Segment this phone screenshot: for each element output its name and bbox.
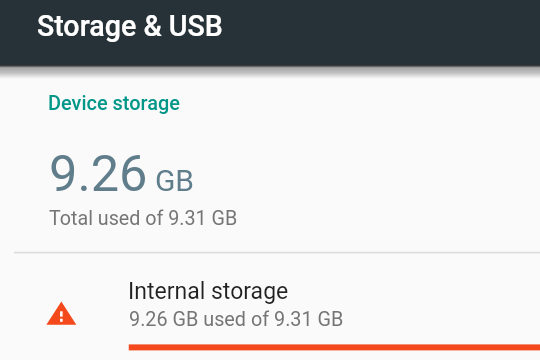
staticText: Total used of 9.31 GB	[49, 207, 238, 230]
button[interactable]: Storage warning	[0, 253, 540, 360]
staticText: Device storage	[48, 92, 180, 115]
staticText: Storage & USB	[37, 9, 223, 43]
staticText: 9.26 GB used of 9.31 GB	[129, 308, 344, 331]
other: Storage warning	[42, 296, 82, 330]
staticText: 9.26 GB	[49, 144, 195, 203]
staticText: Internal storage	[128, 278, 289, 305]
